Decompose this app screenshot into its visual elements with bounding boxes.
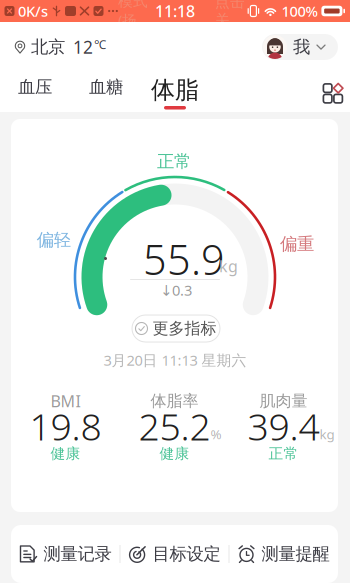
staticText: BMI [50, 390, 80, 412]
button[interactable]: 北京 [12, 34, 108, 60]
staticText: 更多指标 [152, 319, 216, 338]
button[interactable]: 更多指标 [132, 315, 220, 342]
staticText: 北京 [31, 36, 65, 58]
button[interactable]: 目标设定 [120, 525, 228, 583]
staticText: 健康 [159, 444, 189, 462]
staticText: 正常 [157, 151, 191, 172]
staticText: kg [219, 255, 238, 277]
button[interactable]: 我 [262, 34, 338, 60]
staticText: kg [319, 425, 334, 443]
button[interactable]: 测量记录 [11, 525, 119, 583]
staticText: 模式(扬 [118, 0, 148, 30]
button[interactable]: 血糖 [76, 70, 136, 104]
staticText: 健康 [50, 444, 80, 462]
staticText: 3月20日 11:13 星期六 [103, 350, 246, 370]
staticText: 正常 [268, 444, 298, 462]
staticText: 体脂 [151, 75, 199, 105]
staticText: 血糖 [89, 76, 123, 98]
button[interactable]: 体脂 [145, 70, 205, 110]
button[interactable]: 测量提醒 [229, 525, 337, 583]
staticText: 0K/s [18, 1, 48, 21]
button[interactable]: 血压 [5, 70, 65, 104]
staticText: 12 [73, 35, 93, 58]
staticText: 体脂率 [150, 391, 198, 411]
button[interactable]: Tools [314, 73, 344, 103]
staticText: 测量提醒 [261, 543, 329, 565]
staticText: 25.2 [138, 401, 210, 451]
staticText: 测量记录 [43, 543, 111, 565]
staticText: 100% [281, 1, 317, 21]
staticText: 血压 [18, 76, 52, 98]
staticText: 目标设定 [152, 543, 220, 565]
staticText: 39.4 [247, 401, 319, 451]
staticText: 55.9 [143, 232, 225, 286]
staticText: ↓0.3 [160, 280, 192, 300]
staticText: 11:18 [155, 0, 195, 22]
staticText: 偏轻 [37, 229, 71, 251]
staticText: 我 [293, 36, 310, 58]
staticText: 偏重 [280, 233, 314, 255]
staticText: 点击关 [215, 0, 245, 29]
staticText: ℃ [94, 36, 106, 52]
staticText: 肌肉量 [259, 391, 307, 411]
staticText: % [210, 425, 221, 443]
staticText: 19.8 [29, 401, 101, 451]
